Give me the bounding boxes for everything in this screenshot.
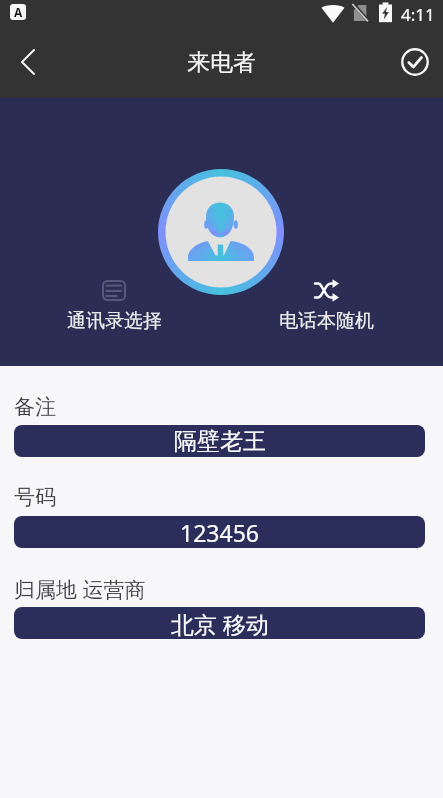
staticText: 通讯录选择	[67, 309, 162, 333]
staticText: 北京 移动	[171, 608, 269, 639]
staticText: 备注	[14, 394, 56, 420]
button[interactable]: 隔壁老王	[14, 425, 425, 457]
button[interactable]: Back	[0, 34, 56, 90]
staticText: 隔壁老王	[174, 427, 266, 456]
button[interactable]: 123456	[14, 516, 425, 548]
button[interactable]: Confirm	[387, 34, 443, 90]
button[interactable]: Choose from contacts	[49, 276, 179, 337]
staticText: 号码	[14, 484, 56, 510]
staticText: 4:11	[401, 3, 435, 26]
button[interactable]: 北京 移动	[14, 607, 425, 639]
staticText: 电话本随机	[279, 309, 374, 333]
staticText: 123456	[180, 517, 259, 548]
staticText: 来电者	[187, 48, 256, 77]
staticText: 归属地 运营商	[14, 575, 146, 604]
button[interactable]: Random from phone book	[261, 276, 391, 337]
staticText: A	[14, 4, 23, 20]
